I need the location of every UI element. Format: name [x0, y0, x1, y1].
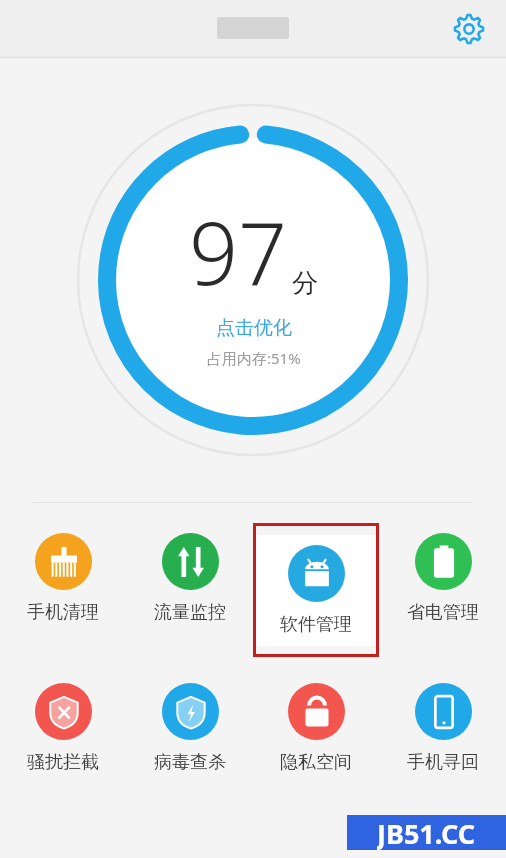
staticText: 隐私空间: [280, 751, 352, 774]
staticText: 病毒查杀: [154, 751, 226, 774]
staticText: 占用内存:51%: [207, 348, 301, 368]
staticText: 97: [189, 193, 288, 310]
staticText: 省电管理: [407, 601, 479, 624]
button[interactable]: 手机寻回: [380, 673, 506, 784]
staticText: 手机清理: [27, 601, 99, 624]
staticText: 骚扰拦截: [27, 751, 99, 774]
staticText: 流量监控: [154, 601, 226, 624]
button[interactable]: 97: [75, 102, 431, 458]
button[interactable]: 手机清理: [0, 523, 126, 634]
staticText: 分: [292, 267, 318, 300]
button[interactable]: 隐私空间: [253, 673, 379, 784]
button[interactable]: 流量监控: [127, 523, 253, 634]
staticText: JB51.CC: [377, 815, 476, 850]
button[interactable]: 骚扰拦截: [0, 673, 126, 784]
button[interactable]: 省电管理: [380, 523, 506, 634]
button[interactable]: Settings: [446, 6, 492, 52]
staticText: 软件管理: [280, 613, 352, 636]
button[interactable]: 病毒查杀: [127, 673, 253, 784]
staticText: 手机寻回: [407, 751, 479, 774]
button[interactable]: 软件管理: [253, 535, 379, 646]
staticText: 点击优化: [216, 316, 292, 340]
